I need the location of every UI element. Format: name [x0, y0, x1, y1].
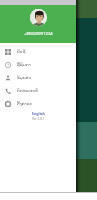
button[interactable]: ຕັ້ງຄ່າລະ — [0, 97, 76, 110]
button[interactable]: ຂໍ້ມູນສ່ວ — [0, 71, 76, 84]
staticText: English — [32, 111, 45, 116]
staticText: ຂໍ້ມູນສ່ວ — [17, 75, 32, 80]
staticText: Ver 2.0.1 — [32, 117, 45, 121]
button[interactable]: ບັນຊີ — [0, 45, 76, 58]
staticText: ບັນຊີ — [17, 49, 26, 54]
staticText: ຕິດຕໍ່ພວກເຮົ — [17, 88, 38, 93]
button[interactable]: ຊື້ຊິມກາ — [0, 58, 76, 71]
button[interactable]: Profile photo — [30, 9, 47, 26]
staticText: +85620991234 — [24, 31, 53, 37]
staticText: ຊື້ຊິມກາ — [17, 62, 31, 67]
staticText: ຕັ້ງຄ່າລະ — [17, 101, 33, 106]
button[interactable]: English — [0, 111, 76, 121]
button[interactable]: ຕິດຕໍ່ພວກເຮົ — [0, 84, 76, 97]
